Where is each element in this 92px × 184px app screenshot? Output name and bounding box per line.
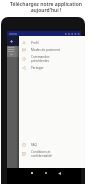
staticText: Modes de paiement (31, 48, 60, 52)
staticText: Commandes précédentes (31, 55, 50, 63)
button[interactable]: Conditions et confidentialité (22, 148, 85, 159)
staticText: Profil (31, 41, 39, 45)
staticText: Téléchargez notre application aujourd'hu… (0, 1, 92, 14)
button[interactable]: FAQ (22, 141, 85, 148)
button[interactable]: Profil (22, 39, 85, 46)
button[interactable]: Modes de paiement (22, 46, 85, 53)
button[interactable]: Commandes précédentes (22, 53, 85, 64)
staticText: Conditions et confidentialité (31, 150, 52, 158)
button[interactable]: Home (44, 171, 48, 175)
button[interactable]: Back (57, 171, 61, 175)
button[interactable]: Recents (30, 171, 34, 175)
button[interactable]: Partager (22, 64, 85, 71)
staticText: Partager (31, 66, 44, 70)
staticText: FAQ (31, 143, 37, 147)
